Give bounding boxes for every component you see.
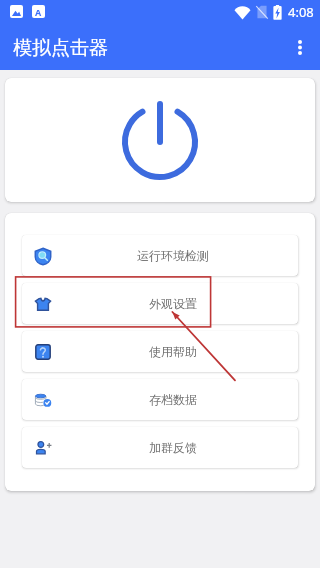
button[interactable]: Start clicker (5, 78, 315, 202)
button[interactable]: 存档数据 (22, 379, 298, 420)
button[interactable]: 运行环境检测 (22, 235, 298, 276)
staticText: 模拟点击器 (13, 36, 108, 60)
button[interactable]: 使用帮助 (22, 331, 298, 372)
button[interactable]: More options (278, 25, 320, 69)
staticText: 运行环境检测 (137, 248, 209, 263)
button[interactable]: 外观设置 (22, 283, 298, 324)
staticText: 4:08 (288, 3, 314, 21)
button[interactable]: Power (117, 99, 203, 185)
button[interactable]: 加群反馈 (22, 427, 298, 468)
staticText: 加群反馈 (149, 440, 197, 455)
staticText: 使用帮助 (149, 344, 197, 359)
staticText: 存档数据 (149, 392, 197, 407)
staticText: A (35, 6, 42, 18)
staticText: 外观设置 (149, 296, 197, 311)
